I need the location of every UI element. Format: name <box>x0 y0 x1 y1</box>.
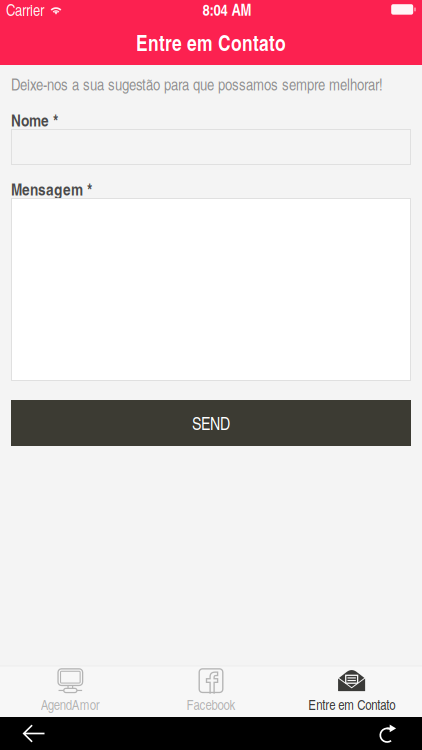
staticText: SEND <box>192 411 230 435</box>
staticText: 8:04 AM <box>202 0 251 21</box>
button[interactable]: Entre em Contato <box>281 666 422 717</box>
staticText: AgendAmor <box>41 695 100 714</box>
staticText: Nome * <box>11 108 58 131</box>
button[interactable]: AgendAmor <box>0 666 141 717</box>
button[interactable]: Facebook <box>141 666 281 717</box>
staticText: Mensagem * <box>11 177 92 200</box>
staticText: Entre em Contato <box>308 695 395 714</box>
staticText: Deixe-nos a sua sugestão para que possam… <box>11 73 383 95</box>
button[interactable]: Reload <box>360 717 416 750</box>
button[interactable]: Back <box>6 717 62 750</box>
staticText: Entre em Contato <box>136 27 286 57</box>
button[interactable]: SEND <box>11 400 411 446</box>
staticText: Carrier <box>6 0 44 20</box>
staticText: Facebook <box>186 695 235 714</box>
